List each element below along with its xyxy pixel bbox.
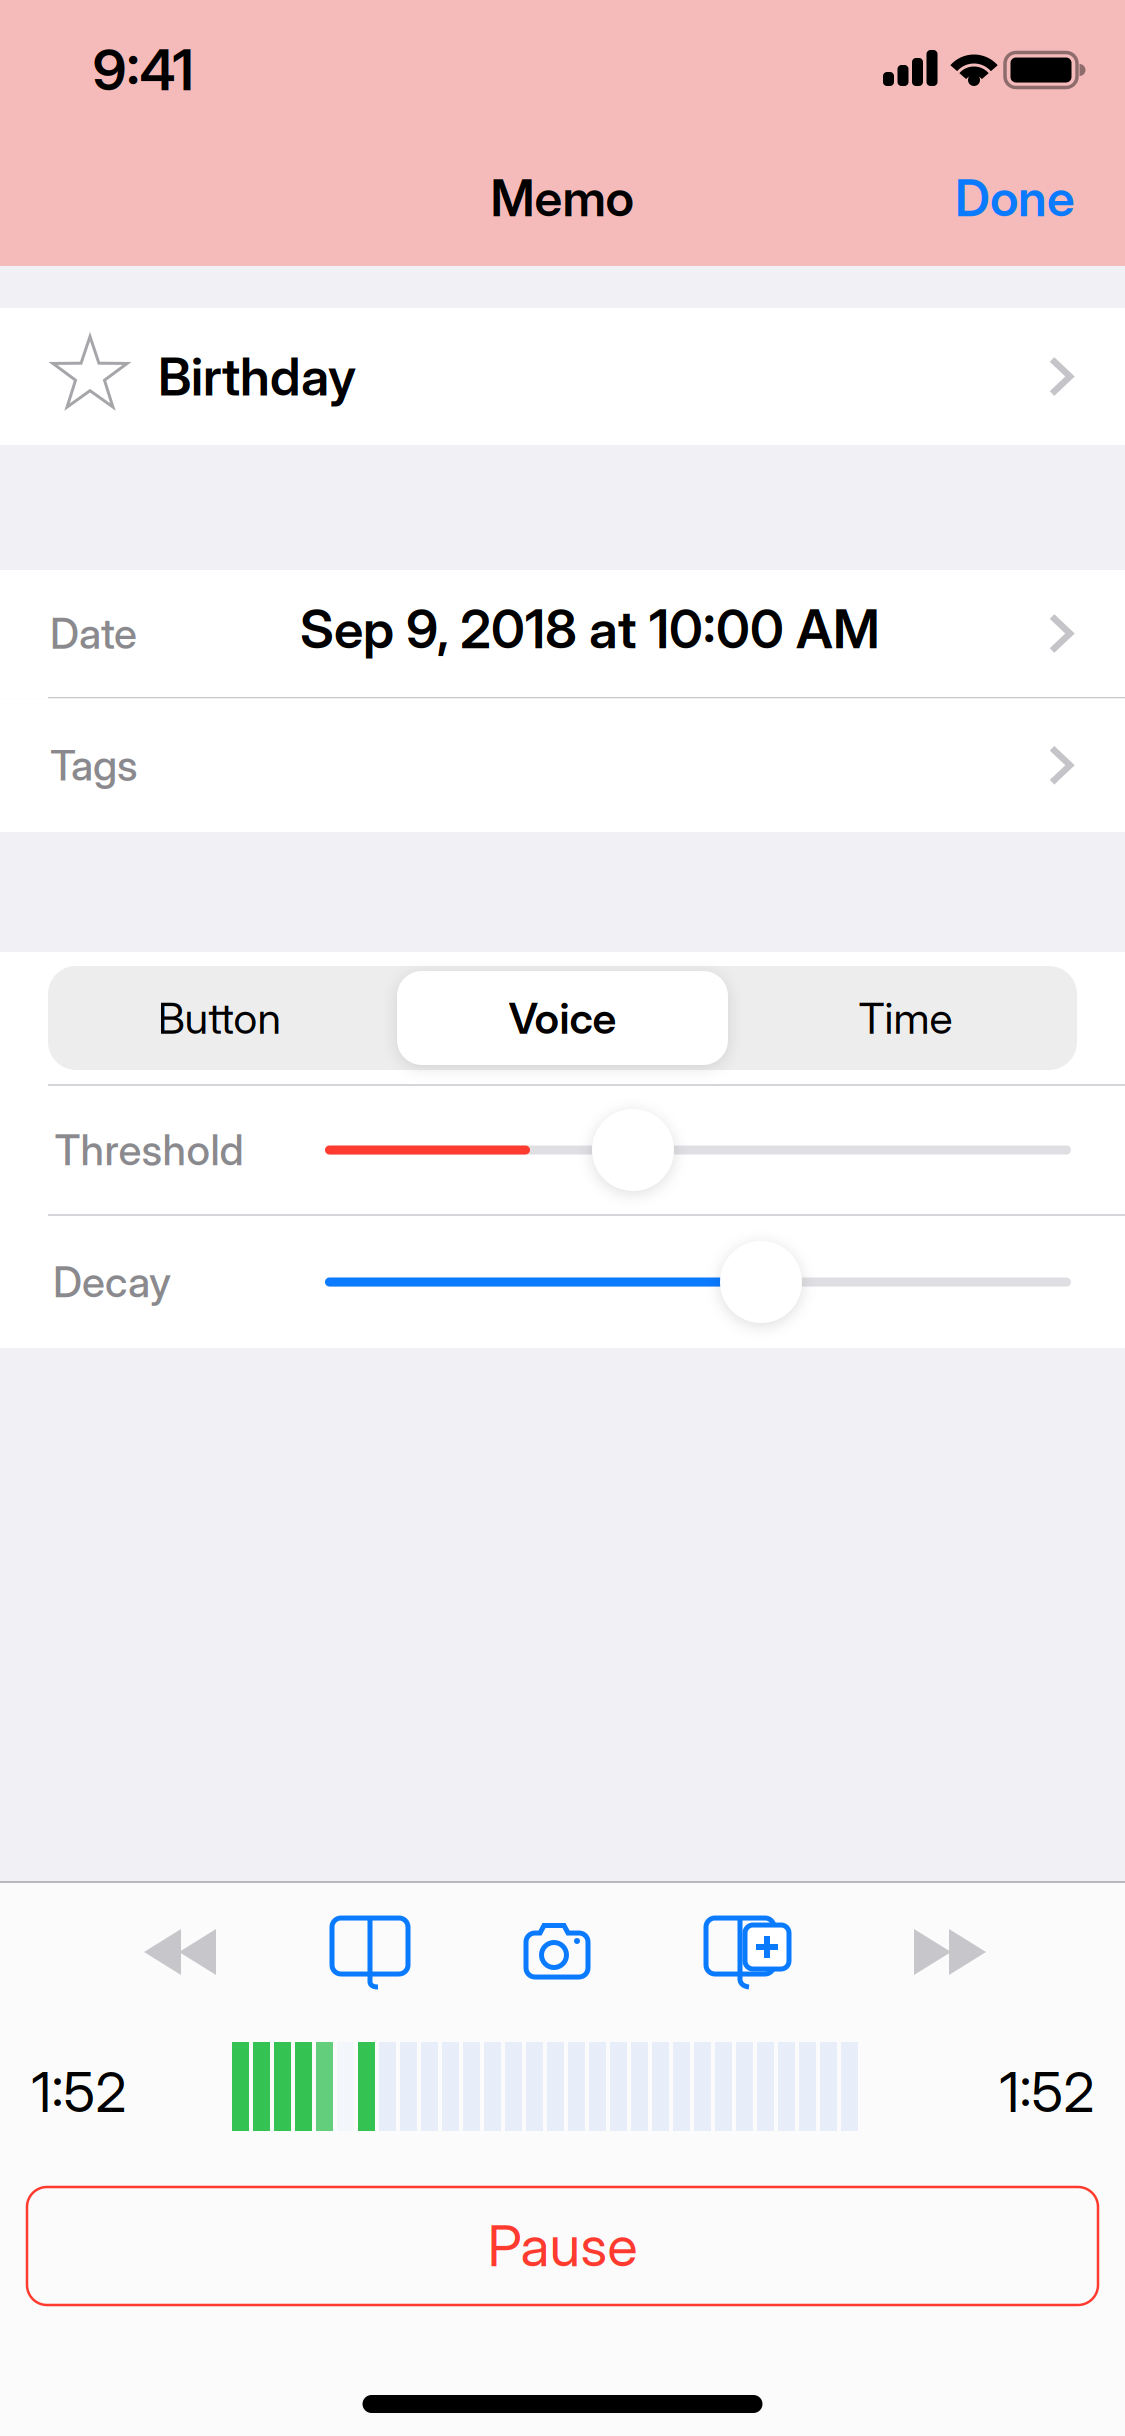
staticText: 1:52: [999, 2059, 1094, 2125]
staticText: Button: [157, 992, 281, 1044]
staticText: Decay: [53, 1257, 171, 1307]
staticText: Sep 9, 2018 at 10:00 AM: [300, 597, 880, 661]
button[interactable]: Time: [858, 992, 952, 1044]
button[interactable]: Fast forward: [914, 1929, 986, 1975]
staticText: Date: [50, 608, 137, 659]
staticText: 1:52: [31, 2059, 126, 2125]
staticText: Birthday: [158, 345, 356, 408]
staticText: Tags: [50, 740, 138, 791]
staticText: Memo: [490, 168, 633, 228]
staticText: Time: [858, 992, 952, 1044]
button[interactable]: Pause: [27, 2187, 1098, 2305]
button[interactable]: Done: [955, 168, 1075, 228]
button[interactable]: Birthday: [0, 308, 1125, 445]
button[interactable]: Add note: [706, 1918, 790, 1988]
staticText: Voice: [508, 992, 616, 1044]
button[interactable]: Camera: [526, 1924, 588, 1978]
staticText: Done: [955, 168, 1075, 228]
button[interactable]: Decay: [720, 1241, 802, 1323]
staticText: Pause: [487, 2212, 637, 2280]
button[interactable]: Rewind: [144, 1929, 216, 1975]
button[interactable]: Date: [0, 570, 1125, 697]
button[interactable]: Threshold: [592, 1109, 674, 1191]
staticText: 9:41: [92, 36, 193, 104]
button[interactable]: Tags: [0, 698, 1125, 832]
staticText: Threshold: [54, 1125, 243, 1175]
button[interactable]: Button: [157, 992, 281, 1044]
button[interactable]: Notes: [332, 1918, 408, 1988]
button[interactable]: Voice: [508, 992, 616, 1044]
